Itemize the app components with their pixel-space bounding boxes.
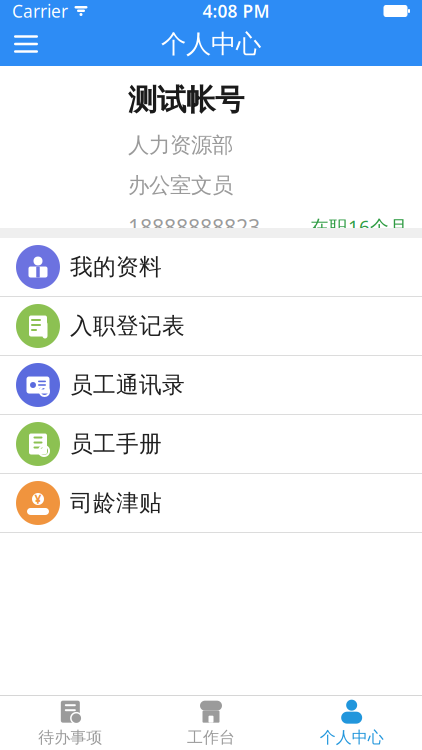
staticText: 待办事项 (38, 728, 102, 747)
staticText: 我的资料 (70, 253, 162, 281)
staticText: 18888888823 (128, 212, 260, 241)
staticText: 员工通讯录 (70, 371, 185, 399)
button[interactable]: ¥ (0, 474, 422, 532)
button[interactable]: 待办事项 (0, 696, 141, 750)
button[interactable]: 员工通讯录 (0, 356, 422, 414)
staticText: 个人中心 (320, 728, 384, 747)
staticText: 个人中心 (161, 28, 261, 59)
button[interactable]: 工作台 (141, 696, 281, 750)
staticText: 测试帐号 (128, 82, 244, 118)
staticText: 员工手册 (70, 430, 162, 458)
staticText: 在职16个月 (310, 214, 408, 239)
staticText: 司龄津贴 (70, 489, 162, 517)
button[interactable]: 员工手册 (0, 415, 422, 473)
button[interactable]: 我的资料 (0, 238, 422, 296)
staticText: Carrier (12, 0, 68, 22)
staticText: 办公室文员 (128, 172, 233, 198)
button[interactable]: 菜单 (4, 22, 48, 66)
staticText: 人力资源部 (128, 132, 233, 158)
staticText: ¥ (34, 491, 41, 507)
button[interactable]: 个人中心 (281, 696, 422, 750)
staticText: 入职登记表 (70, 312, 185, 340)
staticText: 工作台 (187, 728, 235, 747)
button[interactable]: 入职登记表 (0, 297, 422, 355)
staticText: 4:08 PM (202, 0, 269, 22)
